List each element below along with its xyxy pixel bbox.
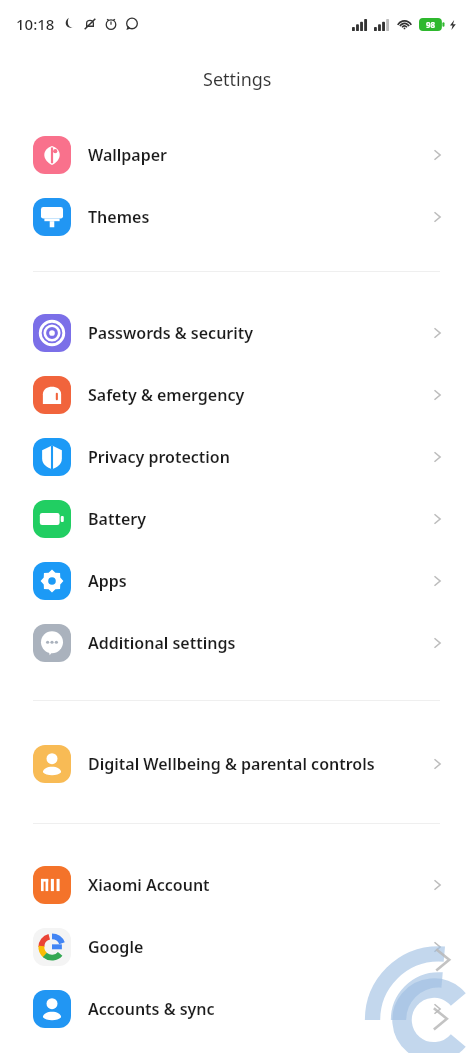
button[interactable]: Apps (0, 550, 474, 612)
button[interactable]: Themes (0, 186, 474, 248)
staticText: 10:18 (16, 14, 55, 34)
staticText: Battery (88, 508, 146, 530)
staticText: 98 (426, 19, 436, 30)
button[interactable]: Xiaomi Account (0, 854, 474, 916)
staticText: Accounts & sync (88, 998, 215, 1020)
staticText: Apps (88, 570, 127, 592)
staticText: Safety & emergency (88, 384, 245, 406)
button[interactable]: Battery (0, 488, 474, 550)
staticText: Xiaomi Account (88, 874, 210, 896)
staticText: Google (88, 936, 144, 958)
staticText: Settings (203, 67, 272, 92)
staticText: Passwords & security (88, 322, 254, 344)
staticText: Themes (88, 206, 150, 228)
button[interactable]: Google (0, 916, 474, 978)
staticText: Additional settings (88, 632, 236, 654)
staticText: Wallpaper (88, 144, 168, 166)
button[interactable]: Digital Wellbeing & parental controls (0, 733, 474, 795)
button[interactable]: Wallpaper (0, 124, 474, 186)
staticText: Privacy protection (88, 446, 230, 468)
button[interactable]: Safety & emergency (0, 364, 474, 426)
button[interactable]: Additional settings (0, 612, 474, 674)
button[interactable]: Accounts & sync (0, 978, 474, 1040)
staticText: Digital Wellbeing & parental controls (88, 753, 375, 775)
button[interactable]: Privacy protection (0, 426, 474, 488)
button[interactable]: Passwords & security (0, 302, 474, 364)
